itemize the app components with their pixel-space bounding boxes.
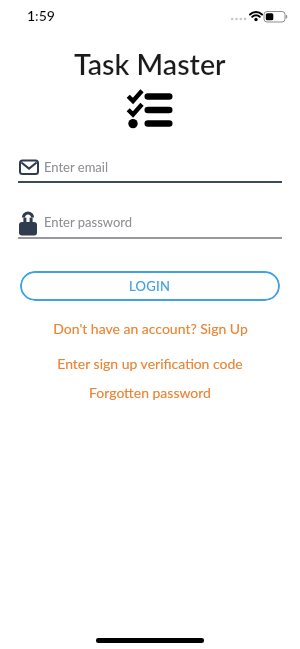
staticText: Task Master bbox=[74, 47, 226, 81]
staticText: Enter sign up verification code bbox=[57, 355, 243, 372]
staticText: Enter password bbox=[44, 214, 133, 230]
staticText: 1:59 bbox=[27, 7, 55, 24]
button[interactable]: LOGIN bbox=[20, 271, 280, 301]
staticText: Don't have an account? Sign Up bbox=[53, 320, 248, 337]
staticText: LOGIN bbox=[129, 278, 171, 294]
button[interactable]: Enter sign up verification code bbox=[53, 351, 247, 376]
staticText: Enter email bbox=[44, 159, 108, 175]
staticText: Forgotten password bbox=[89, 384, 211, 401]
button[interactable]: Forgotten password bbox=[85, 380, 215, 405]
button[interactable]: Don't have an account? Sign Up bbox=[49, 316, 252, 341]
